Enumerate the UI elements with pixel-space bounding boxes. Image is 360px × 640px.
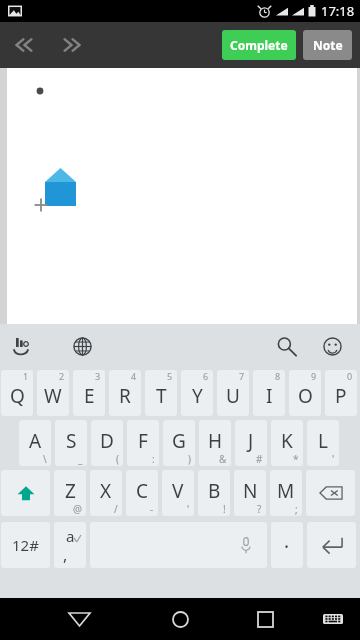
staticText: a — [66, 526, 75, 546]
staticText: U — [226, 383, 240, 409]
staticText: 5 — [167, 370, 173, 382]
staticText: P — [335, 383, 347, 409]
staticText: M — [277, 478, 295, 504]
staticText: , — [63, 544, 68, 566]
staticText: / — [114, 502, 118, 516]
button[interactable]: Complete — [222, 30, 296, 60]
button[interactable]: X — [90, 470, 122, 516]
staticText: : — [152, 452, 155, 466]
button[interactable]: Shift — [1, 470, 50, 516]
staticText: Z — [65, 478, 76, 504]
staticText: ; — [295, 502, 298, 516]
staticText: S — [66, 428, 77, 454]
button[interactable]: C — [126, 470, 158, 516]
button[interactable]: R — [109, 370, 141, 416]
staticText: J — [248, 428, 254, 454]
staticText: F — [138, 428, 148, 454]
button[interactable]: V — [162, 470, 194, 516]
staticText: N — [243, 478, 258, 504]
button[interactable]: B — [198, 470, 230, 516]
staticText: # — [256, 452, 263, 466]
button[interactable]: S — [55, 420, 87, 466]
staticText: Y — [192, 383, 203, 409]
staticText: ) — [188, 452, 191, 466]
staticText: 4 — [131, 370, 137, 382]
staticText: D — [100, 428, 114, 454]
button[interactable]: Back — [58, 598, 100, 640]
button[interactable]: F — [127, 420, 159, 466]
button[interactable]: Input options — [54, 522, 86, 568]
button[interactable]: H — [199, 420, 231, 466]
staticText: Note — [313, 37, 343, 53]
button[interactable]: L — [307, 420, 339, 466]
staticText: 8 — [275, 370, 281, 382]
button[interactable]: Space — [90, 522, 267, 568]
staticText: ( — [116, 452, 119, 466]
button[interactable]: Change language — [60, 324, 104, 368]
button[interactable]: . — [271, 522, 303, 568]
staticText: A — [29, 428, 42, 454]
staticText: G — [172, 428, 186, 454]
button[interactable]: Emoji — [310, 324, 354, 368]
button[interactable]: W — [37, 370, 69, 416]
button[interactable]: T — [145, 370, 177, 416]
button[interactable]: J — [235, 420, 267, 466]
button[interactable]: Switch keyboard — [312, 598, 354, 640]
staticText: * — [293, 452, 299, 466]
staticText: X — [100, 478, 112, 504]
staticText: 17:18 — [321, 2, 355, 20]
staticText: R — [119, 383, 131, 409]
staticText: K — [281, 428, 293, 454]
staticText: 3 — [95, 370, 101, 382]
staticText: & — [219, 452, 227, 466]
button[interactable]: Next — [48, 22, 96, 68]
button[interactable]: U — [217, 370, 249, 416]
staticText: 1 — [23, 370, 29, 382]
staticText: _ — [78, 452, 83, 466]
staticText: I — [266, 383, 273, 409]
button[interactable]: Recents — [244, 598, 286, 640]
staticText: L — [318, 428, 328, 454]
button[interactable]: Enter — [307, 522, 356, 568]
button[interactable]: 12# — [1, 522, 50, 568]
button[interactable]: Backspace — [306, 470, 355, 516]
staticText: 2 — [59, 370, 65, 382]
button[interactable]: Note — [303, 30, 352, 60]
button[interactable]: Home — [159, 598, 201, 640]
button[interactable]: O — [289, 370, 321, 416]
staticText: 6 — [203, 370, 209, 382]
staticText: H — [208, 428, 223, 454]
staticText: B — [208, 478, 221, 504]
button[interactable]: A — [19, 420, 51, 466]
button[interactable]: G — [163, 420, 195, 466]
staticText: Complete — [230, 37, 288, 53]
button[interactable]: I — [253, 370, 285, 416]
staticText: ' — [187, 502, 190, 516]
staticText: ' — [332, 452, 335, 466]
staticText: ! — [223, 502, 226, 516]
staticText: V — [172, 478, 184, 504]
staticText: T — [156, 383, 167, 409]
button[interactable]: Y — [181, 370, 213, 416]
staticText: - — [150, 502, 154, 516]
staticText: C — [136, 478, 149, 504]
staticText: 0 — [347, 370, 353, 382]
button[interactable]: Z — [54, 470, 86, 516]
button[interactable]: E — [73, 370, 105, 416]
button[interactable]: Previous — [0, 22, 48, 68]
staticText: @ — [73, 502, 82, 516]
staticText: ? — [257, 502, 262, 516]
button[interactable]: N — [234, 470, 266, 516]
button[interactable]: M — [270, 470, 302, 516]
button[interactable]: Handwriting input — [0, 324, 44, 368]
staticText: 7 — [239, 370, 245, 382]
button[interactable]: K — [271, 420, 303, 466]
button[interactable]: Q — [1, 370, 33, 416]
staticText: \ — [43, 452, 47, 466]
button[interactable]: D — [91, 420, 123, 466]
button[interactable]: P — [325, 370, 357, 416]
staticText: W — [44, 383, 62, 409]
staticText: E — [84, 383, 95, 409]
button[interactable]: Search — [264, 324, 308, 368]
staticText: 12# — [12, 535, 39, 555]
